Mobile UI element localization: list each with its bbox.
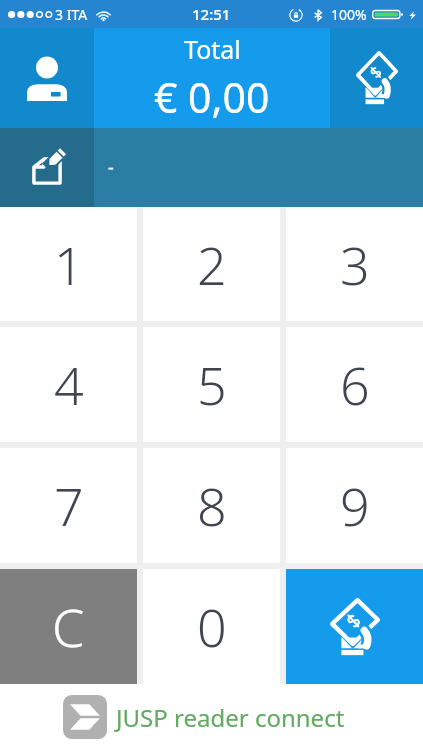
button[interactable]: 5 — [143, 327, 280, 442]
staticText: 5 — [197, 349, 227, 420]
button[interactable]: Charge — [286, 569, 423, 684]
button[interactable]: 8 — [143, 448, 280, 563]
staticText: C — [52, 591, 85, 662]
staticText: JUSP reader connect — [116, 701, 345, 734]
staticText: 8 — [197, 470, 227, 541]
button[interactable]: 1 — [0, 207, 137, 321]
staticText: 3 ITA — [55, 5, 88, 24]
staticText: 12:51 — [192, 4, 231, 24]
button[interactable]: Note — [0, 128, 94, 207]
staticText: 0 — [197, 591, 227, 662]
button[interactable]: Total — [94, 28, 330, 128]
staticText: 9 — [340, 470, 370, 541]
button[interactable]: 3 — [286, 207, 423, 321]
button[interactable]: Customer — [0, 28, 94, 128]
button[interactable]: 4 — [0, 327, 137, 442]
staticText: 1 — [54, 229, 84, 300]
button[interactable]: Charge — [330, 28, 423, 128]
button[interactable]: 6 — [286, 327, 423, 442]
staticText: - — [108, 155, 114, 180]
staticText: 100% — [331, 5, 367, 24]
staticText: 6 — [340, 349, 370, 420]
button[interactable]: 2 — [143, 207, 280, 321]
staticText: 7 — [54, 470, 84, 541]
staticText: 4 — [54, 349, 84, 420]
button[interactable]: 0 — [143, 569, 280, 684]
button[interactable]: C — [0, 569, 137, 684]
staticText: Total — [184, 32, 241, 66]
button[interactable]: - — [94, 128, 423, 207]
staticText: 2 — [197, 229, 227, 300]
staticText: € 0,00 — [154, 69, 270, 125]
button[interactable]: JUSP reader connect — [63, 695, 345, 739]
button[interactable]: 7 — [0, 448, 137, 563]
staticText: 3 — [340, 229, 370, 300]
button[interactable]: 9 — [286, 448, 423, 563]
